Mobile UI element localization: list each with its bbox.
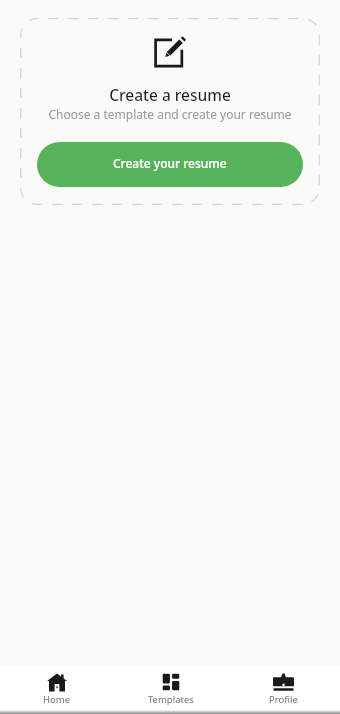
- button[interactable]: Create your resume: [37, 142, 303, 187]
- staticText: Create your resume: [113, 155, 227, 171]
- button[interactable]: Home: [0, 665, 114, 714]
- button[interactable]: Create a resume: [20, 18, 320, 205]
- staticText: Home: [43, 693, 71, 706]
- staticText: Profile: [269, 693, 298, 706]
- staticText: Create a resume: [109, 84, 231, 105]
- button[interactable]: Profile: [227, 665, 340, 714]
- button[interactable]: Templates: [114, 665, 227, 714]
- staticText: Templates: [148, 693, 194, 706]
- staticText: Choose a template and create your resume: [48, 106, 292, 122]
